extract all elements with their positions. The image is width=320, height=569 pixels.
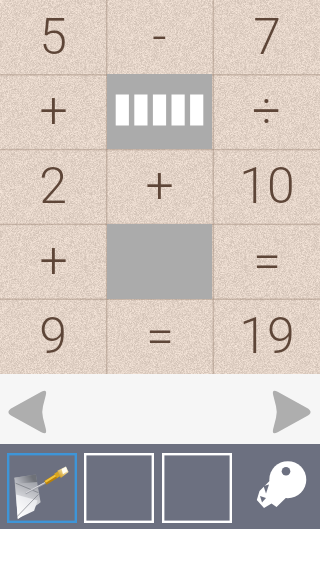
button[interactable]: + [0,224,106,299]
button[interactable]: 19 [213,299,320,374]
staticText: 19 [239,307,295,366]
button[interactable]: = [213,224,320,299]
button[interactable]: Next [269,388,317,436]
button[interactable]: Empty slot [162,453,232,523]
button[interactable]: Empty slot [84,453,154,523]
staticText: 5 [39,8,67,67]
button[interactable]: 5 [0,0,106,74]
staticText: - [152,8,167,67]
button[interactable]: - [106,0,213,74]
staticText: = [146,307,174,366]
button[interactable]: 9 [0,299,106,374]
button[interactable]: 10 [213,149,320,224]
staticText: + [145,157,174,216]
button[interactable]: + [0,74,106,149]
button[interactable]: Shovel item [7,453,77,523]
staticText: = [253,232,281,291]
button[interactable] [106,74,213,149]
button[interactable]: 2 [0,149,106,224]
button[interactable]: Previous [2,388,50,436]
button[interactable]: + [106,149,213,224]
button[interactable] [106,224,213,299]
staticText: 2 [39,157,67,216]
button[interactable]: ÷ [213,74,320,149]
button[interactable]: Keys [248,455,308,515]
staticText: ÷ [252,82,281,141]
staticText: + [39,232,68,291]
staticText: + [39,82,68,141]
staticText: 10 [239,157,295,216]
button[interactable]: = [106,299,213,374]
staticText: 9 [39,307,67,366]
staticText: 7 [253,8,281,67]
button[interactable]: 7 [213,0,320,74]
